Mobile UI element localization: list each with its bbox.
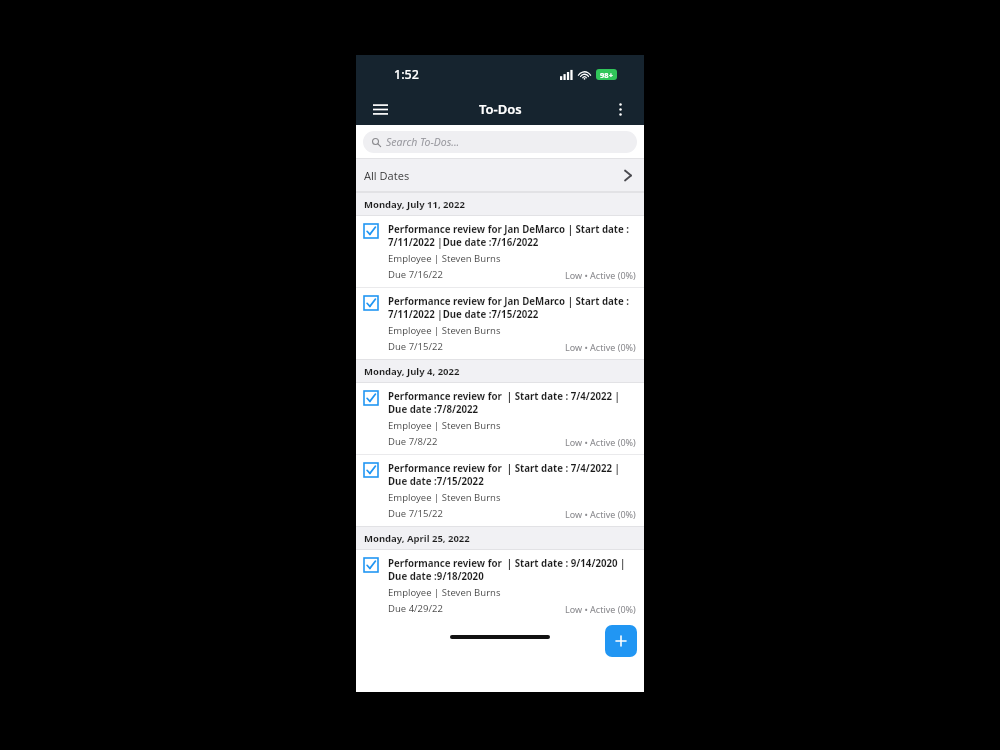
staticText: Due 7/16/22 (388, 268, 443, 281)
button[interactable]: Toggle complete (364, 391, 378, 405)
staticText: Monday, July 11, 2022 (364, 198, 465, 211)
staticText: All Dates (364, 168, 410, 183)
staticText: Low • Active (0%) (565, 603, 636, 615)
button[interactable]: Toggle complete (356, 550, 644, 621)
button[interactable]: Search To-Dos... (363, 131, 637, 153)
staticText: Low • Active (0%) (565, 508, 636, 520)
staticText: Employee | Steven Burns (388, 419, 501, 432)
button[interactable]: Add To-Do (605, 625, 637, 657)
staticText: Employee | Steven Burns (388, 491, 501, 504)
staticText: Due 4/29/22 (388, 602, 443, 615)
button[interactable]: Toggle complete (356, 288, 644, 359)
staticText: Employee | Steven Burns (388, 252, 501, 265)
staticText: Performance review for Jan DeMarco | Sta… (388, 223, 636, 249)
button[interactable]: Menu (367, 96, 393, 122)
staticText: Search To-Dos... (386, 135, 460, 149)
button[interactable]: All Dates (356, 159, 644, 191)
button[interactable]: Toggle complete (356, 455, 644, 526)
staticText: Performance review for | Start date : 9/… (388, 557, 636, 583)
staticText: Performance review for | Start date : 7/… (388, 390, 636, 416)
button[interactable]: Toggle complete (364, 224, 378, 238)
staticText: Due 7/8/22 (388, 435, 438, 448)
staticText: Low • Active (0%) (565, 341, 636, 353)
button[interactable]: Toggle complete (356, 383, 644, 454)
staticText: Due 7/15/22 (388, 507, 443, 520)
staticText: Performance review for | Start date : 7/… (388, 462, 636, 488)
staticText: Low • Active (0%) (565, 269, 636, 281)
staticText: Monday, April 25, 2022 (364, 532, 470, 545)
button[interactable]: Toggle complete (364, 296, 378, 310)
button[interactable]: More options (608, 97, 632, 121)
staticText: Monday, July 4, 2022 (364, 365, 460, 378)
staticText: To-Dos (479, 100, 522, 118)
button[interactable]: Toggle complete (364, 558, 378, 572)
staticText: 1:52 (394, 66, 419, 83)
staticText: Performance review for Jan DeMarco | Sta… (388, 295, 636, 321)
staticText: 98+ (600, 70, 613, 80)
staticText: Due 7/15/22 (388, 340, 443, 353)
staticText: Employee | Steven Burns (388, 324, 501, 337)
button[interactable]: Toggle complete (364, 463, 378, 477)
button[interactable]: Toggle complete (356, 216, 644, 287)
staticText: Employee | Steven Burns (388, 586, 501, 599)
staticText: Low • Active (0%) (565, 436, 636, 448)
